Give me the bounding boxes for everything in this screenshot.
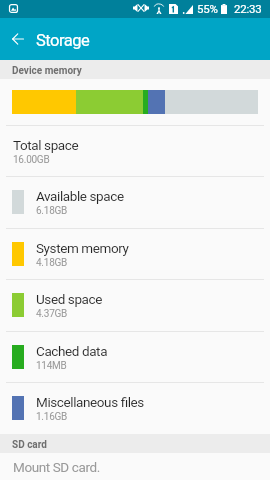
button[interactable]: System memory bbox=[0, 228, 270, 280]
staticText: System memory bbox=[36, 240, 129, 256]
staticText: 4.18GB bbox=[36, 257, 68, 269]
staticText: Storage bbox=[36, 31, 90, 50]
staticText: Available space bbox=[36, 188, 124, 204]
staticText: 114MB bbox=[36, 360, 67, 372]
staticText: 55% bbox=[197, 2, 218, 15]
staticText: Cached data bbox=[36, 343, 108, 359]
button[interactable]: Cached data bbox=[0, 331, 270, 383]
button[interactable]: Navigate up bbox=[0, 18, 36, 60]
staticText: Mount SD card. bbox=[13, 459, 100, 475]
button[interactable]: Mount SD card. bbox=[0, 452, 270, 479]
button[interactable]: Miscellaneous files bbox=[0, 382, 270, 434]
staticText: 1.16GB bbox=[36, 411, 68, 423]
staticText: Device memory bbox=[12, 65, 82, 77]
button[interactable]: Available space bbox=[0, 176, 270, 228]
staticText: 16.00GB bbox=[13, 154, 50, 166]
staticText: 22:33 bbox=[234, 2, 262, 15]
staticText: 4.37GB bbox=[36, 308, 68, 320]
staticText: 6.18GB bbox=[36, 205, 68, 217]
staticText: Miscellaneous files bbox=[36, 394, 144, 410]
staticText: SD card bbox=[12, 439, 47, 451]
button[interactable]: Used space bbox=[0, 279, 270, 331]
button[interactable]: Total space bbox=[0, 125, 270, 177]
staticText: Total space bbox=[13, 137, 79, 153]
staticText: Used space bbox=[36, 291, 102, 307]
